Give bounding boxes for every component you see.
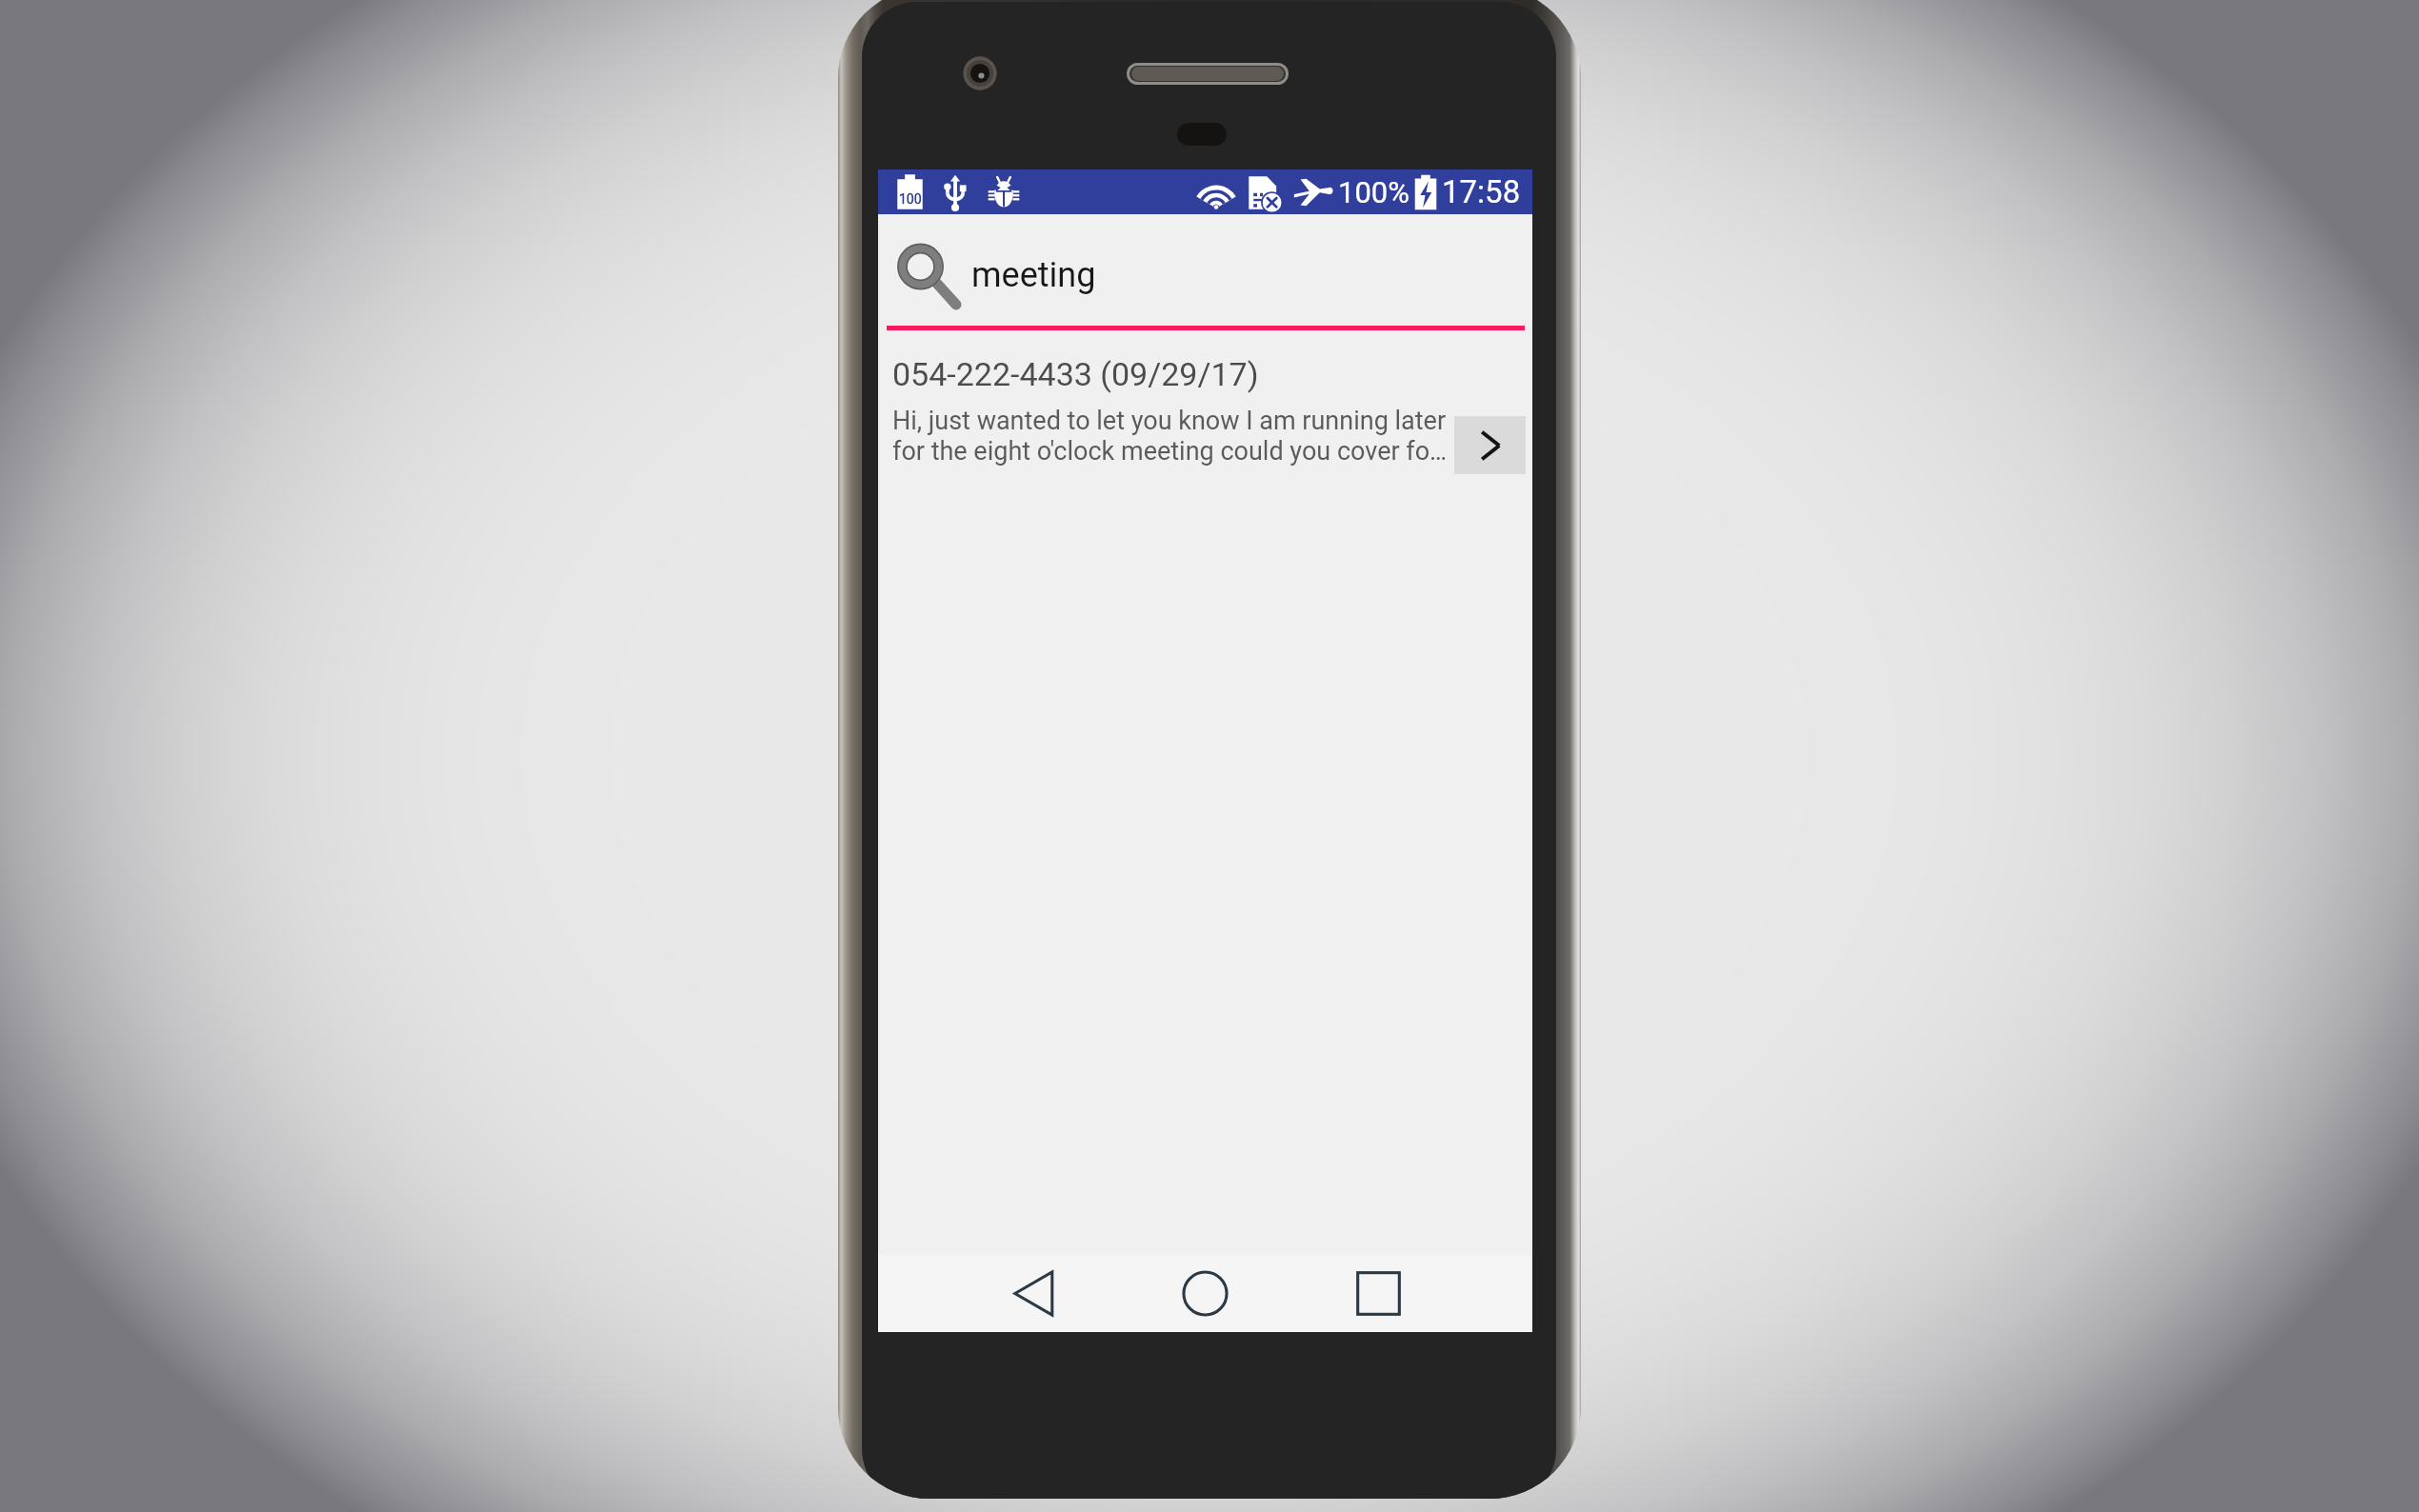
staticText: Hi, just wanted to let you know I am run… [892, 406, 1450, 466]
button[interactable]: Search [878, 214, 1532, 326]
staticText: meeting [971, 255, 1096, 295]
button[interactable]: Home [1162, 1255, 1248, 1331]
staticText: 100 [899, 191, 922, 207]
other: Search [897, 245, 960, 308]
button[interactable]: 054-222-4433 (09/29/17) [878, 330, 1532, 511]
button[interactable]: Open message [1454, 416, 1526, 474]
button[interactable]: Recent apps [1335, 1255, 1421, 1331]
staticText: 17:58 [1442, 173, 1521, 210]
staticText: 054-222-4433 (09/29/17) [892, 355, 1259, 393]
staticText: 100% [1338, 175, 1409, 209]
button[interactable]: Back [990, 1255, 1076, 1331]
